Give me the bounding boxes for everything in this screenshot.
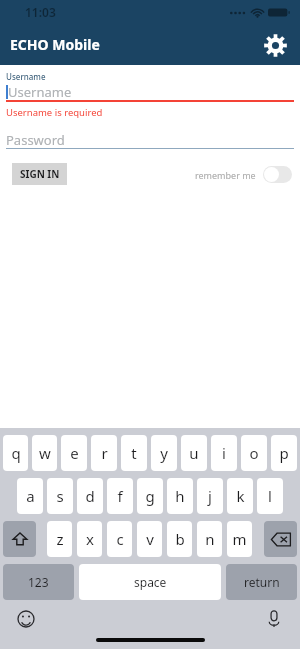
staticText: p (279, 443, 289, 463)
button[interactable]: i (211, 435, 237, 471)
button[interactable]: Emoji (12, 605, 40, 633)
button[interactable]: Password (0, 131, 300, 148)
button[interactable]: v (137, 521, 162, 557)
staticText: y (160, 443, 168, 463)
button[interactable]: m (227, 521, 252, 557)
button[interactable]: space (79, 564, 221, 600)
staticText: Username (8, 83, 72, 100)
button[interactable]: o (241, 435, 267, 471)
button[interactable]: 123 (3, 564, 74, 600)
staticText: g (145, 486, 155, 506)
staticText: x (86, 529, 94, 549)
staticText: o (249, 443, 259, 463)
staticText: w (39, 443, 51, 463)
button[interactable]: f (107, 478, 133, 514)
button[interactable]: Settings (258, 28, 292, 62)
button[interactable]: Backspace (264, 521, 297, 557)
button[interactable]: return (226, 564, 297, 600)
staticText: z (56, 529, 64, 549)
staticText: remember me (195, 169, 256, 181)
staticText: ECHO Mobile (10, 35, 100, 54)
button[interactable]: k (227, 478, 253, 514)
button[interactable]: p (271, 435, 297, 471)
button[interactable]: x (77, 521, 102, 557)
button[interactable]: b (167, 521, 192, 557)
button[interactable]: n (197, 521, 222, 557)
button[interactable]: r (91, 435, 117, 471)
button[interactable]: s (47, 478, 73, 514)
button[interactable]: Shift (3, 521, 36, 557)
staticText: space (134, 574, 167, 590)
staticText: Username (6, 71, 46, 82)
staticText: v (146, 529, 154, 549)
staticText: 11:03 (25, 4, 56, 20)
button[interactable]: Username (0, 83, 300, 100)
button[interactable]: remember me (195, 166, 292, 183)
staticText: return (244, 574, 280, 590)
button[interactable]: w (32, 435, 57, 471)
button[interactable]: Dictation (260, 605, 288, 633)
staticText: i (222, 443, 226, 463)
button[interactable]: y (151, 435, 177, 471)
staticText: c (116, 529, 124, 549)
staticText: q (11, 443, 21, 463)
button[interactable]: SIGN IN (12, 163, 67, 185)
button[interactable]: e (61, 435, 87, 471)
button[interactable]: l (257, 478, 283, 514)
staticText: Username is required (6, 106, 103, 119)
button[interactable]: z (47, 521, 72, 557)
button[interactable]: d (77, 478, 103, 514)
staticText: a (26, 486, 35, 506)
staticText: t (131, 443, 137, 463)
staticText: 123 (28, 574, 49, 590)
staticText: n (205, 529, 215, 549)
button[interactable]: j (197, 478, 223, 514)
staticText: u (189, 443, 199, 463)
staticText: k (236, 486, 245, 506)
button[interactable]: a (17, 478, 43, 514)
button[interactable]: t (121, 435, 147, 471)
staticText: e (70, 443, 79, 463)
staticText: m (232, 529, 247, 549)
staticText: f (117, 486, 123, 506)
staticText: s (56, 486, 64, 506)
staticText: r (101, 443, 108, 463)
button[interactable]: u (181, 435, 207, 471)
staticText: h (175, 486, 185, 506)
button[interactable]: h (167, 478, 193, 514)
staticText: Password (6, 131, 65, 148)
staticText: l (268, 486, 272, 506)
button[interactable]: c (107, 521, 132, 557)
staticText: j (208, 486, 212, 506)
staticText: d (85, 486, 95, 506)
staticText: b (175, 529, 185, 549)
staticText: SIGN IN (20, 167, 60, 181)
button[interactable]: q (3, 435, 28, 471)
button[interactable]: g (137, 478, 163, 514)
